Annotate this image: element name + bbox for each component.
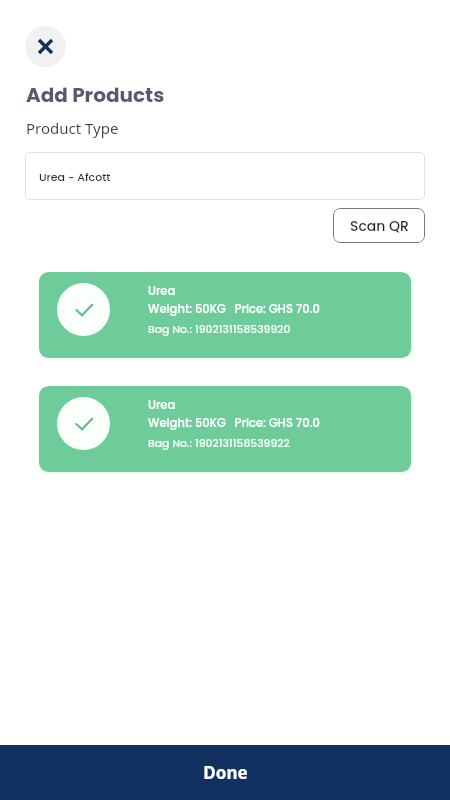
staticText: Urea <box>148 283 176 299</box>
staticText: Weight: 50KG Price: GHS 70.0 <box>148 301 320 317</box>
button[interactable]: Scan QR <box>333 208 425 243</box>
button[interactable]: Urea <box>39 386 411 472</box>
button[interactable]: Urea <box>39 272 411 358</box>
staticText: Urea - Afcott <box>39 169 111 184</box>
button[interactable]: Close <box>25 26 66 67</box>
button[interactable]: Done <box>0 745 450 800</box>
button[interactable]: Urea - Afcott <box>25 152 425 200</box>
staticText: Bag No.: 1902131158539922 <box>148 436 290 451</box>
staticText: Add Products <box>26 81 165 109</box>
staticText: Bag No.: 1902131158539920 <box>148 322 291 337</box>
staticText: Urea <box>148 397 176 413</box>
staticText: Product Type <box>26 118 119 138</box>
staticText: Done <box>203 761 248 784</box>
staticText: Scan QR <box>350 216 409 236</box>
staticText: Weight: 50KG Price: GHS 70.0 <box>148 415 320 431</box>
